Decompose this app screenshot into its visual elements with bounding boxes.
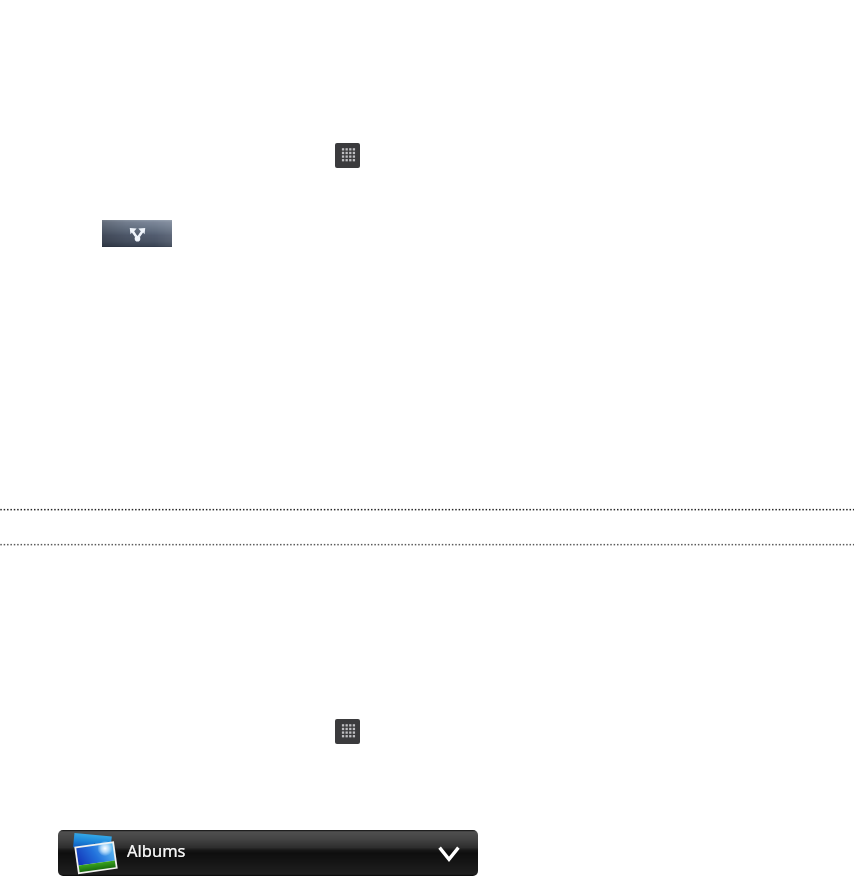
button[interactable]: Share — [102, 220, 172, 247]
button[interactable]: Albums — [58, 830, 478, 876]
other: Expand albums — [428, 838, 470, 870]
button[interactable]: All apps — [335, 719, 360, 744]
button[interactable]: All apps — [335, 143, 360, 168]
staticText: Albums — [127, 839, 186, 861]
